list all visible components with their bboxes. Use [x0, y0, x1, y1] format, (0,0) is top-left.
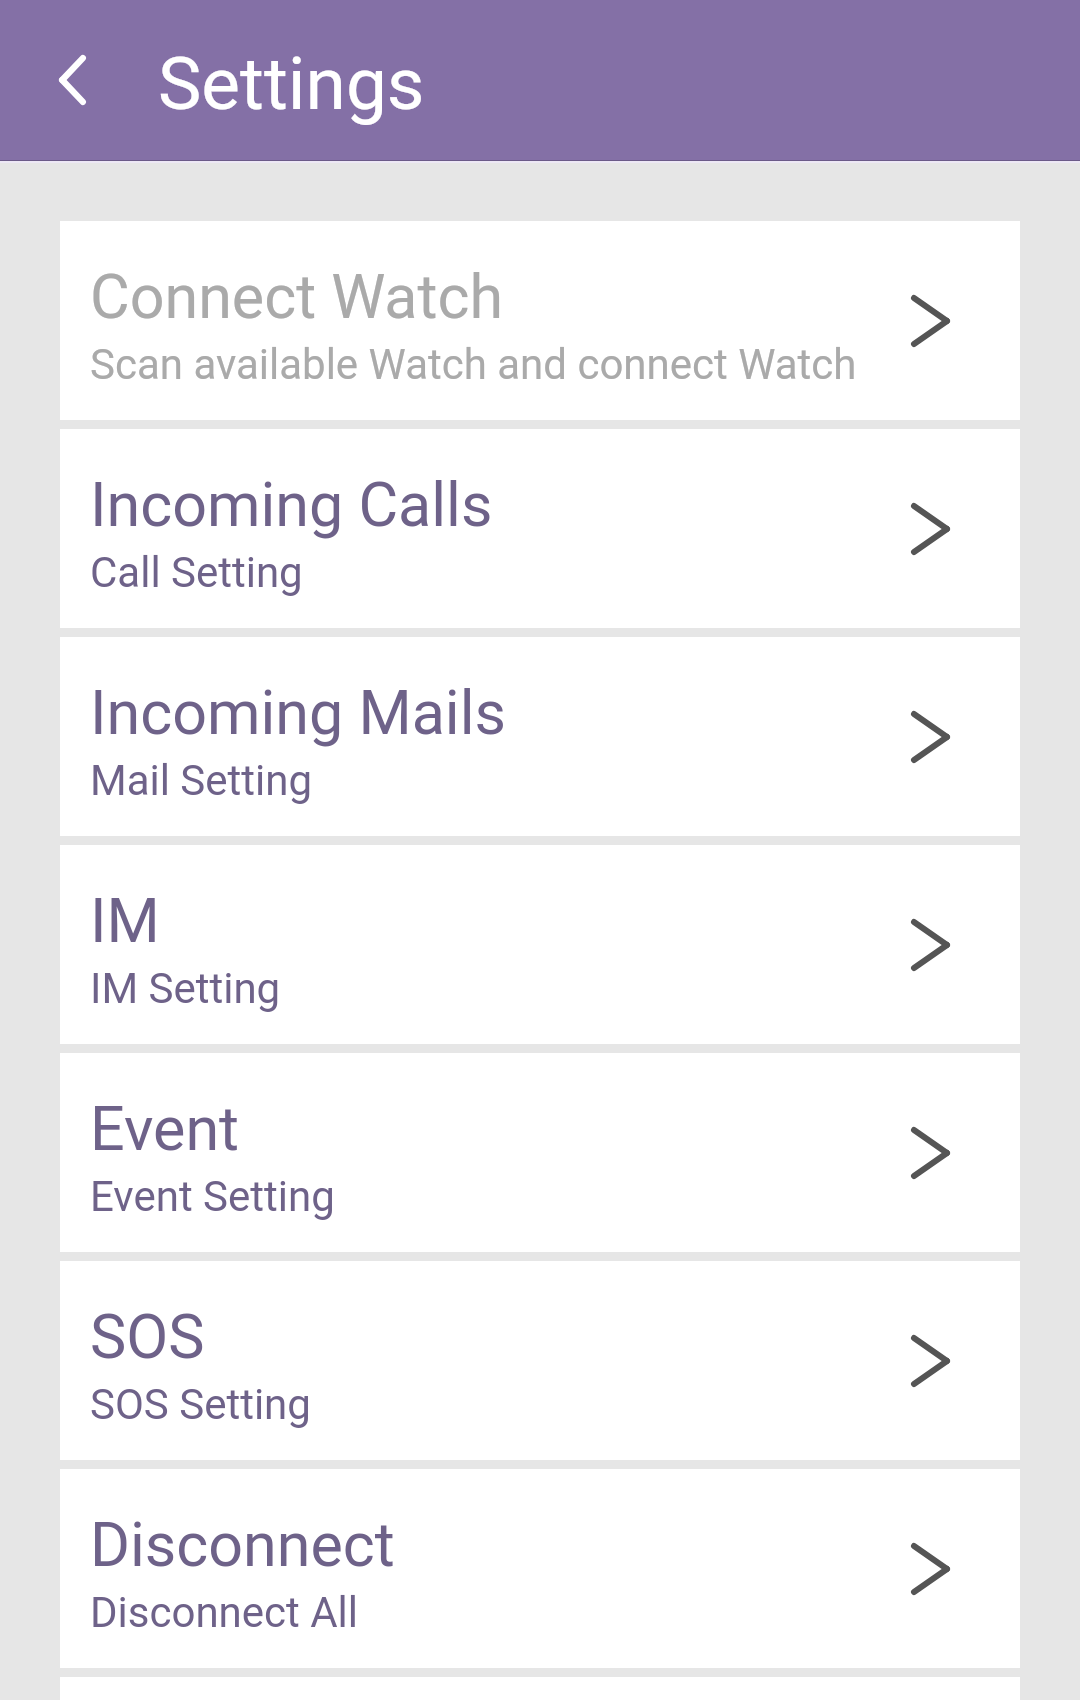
button[interactable]: Connect Watch	[60, 221, 1020, 420]
staticText: Disconnect	[90, 1509, 395, 1580]
staticText: Settings	[158, 41, 425, 127]
staticText: Disconnect All	[90, 1588, 359, 1637]
button[interactable]: Incoming Mails	[60, 637, 1020, 836]
staticText: Incoming Mails	[90, 677, 506, 748]
staticText: Mail Setting	[90, 756, 313, 805]
staticText: Connect Watch	[90, 261, 504, 332]
button[interactable]: Incoming Calls	[60, 429, 1020, 628]
staticText: SOS	[90, 1301, 205, 1372]
staticText: IM	[90, 885, 160, 956]
button[interactable]: IM	[60, 845, 1020, 1044]
staticText: SOS Setting	[90, 1380, 311, 1429]
button[interactable]: SOS	[60, 1261, 1020, 1460]
button[interactable]: Back	[24, 32, 120, 128]
staticText: Event	[90, 1093, 240, 1164]
staticText: Event Setting	[90, 1172, 335, 1221]
staticText: Call Setting	[90, 548, 303, 597]
staticText: Scan available Watch and connect Watch	[90, 340, 857, 389]
button[interactable]: Disconnect	[60, 1469, 1020, 1668]
staticText: Incoming Calls	[90, 469, 493, 540]
button[interactable]: Event	[60, 1053, 1020, 1252]
staticText: IM Setting	[90, 964, 281, 1013]
